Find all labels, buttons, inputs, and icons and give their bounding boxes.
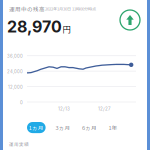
staticText: 12/13 — [58, 106, 70, 111]
staticText: 円 — [62, 23, 70, 35]
button[interactable]: 1年 — [107, 122, 119, 133]
button[interactable]: 上昇 — [119, 9, 141, 31]
staticText: 6ヵ月 — [82, 123, 97, 132]
staticText: 運用中の残高 — [9, 5, 45, 13]
staticText: 24,000 — [7, 69, 23, 74]
staticText: 3ヵ月 — [55, 123, 70, 132]
button[interactable]: 6ヵ月 — [80, 122, 99, 133]
staticText: 0 — [20, 100, 23, 105]
staticText: 12/27 — [98, 106, 111, 111]
staticText: 1ヵ月 — [29, 123, 44, 132]
staticText: 36,000 — [7, 54, 23, 59]
button[interactable]: 1ヵ月 — [27, 122, 46, 133]
staticText: 1年 — [109, 123, 118, 132]
staticText: 12,000 — [8, 85, 23, 90]
staticText: 運用実績 — [9, 141, 29, 148]
button[interactable]: 3ヵ月 — [54, 122, 72, 133]
staticText: 28,970 — [7, 17, 62, 36]
staticText: 2022年1月30日 11時00分時点 — [45, 6, 96, 12]
